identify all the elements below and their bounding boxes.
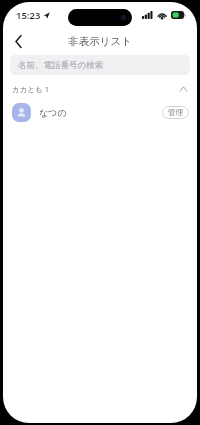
button[interactable]: 名前、電話番号の検索 (10, 55, 190, 75)
staticText: 非表示リスト (68, 35, 132, 48)
staticText: 名前、電話番号の検索 (18, 60, 104, 71)
button[interactable]: カカとも 1 (3, 80, 197, 97)
staticText: カカとも 1 (12, 84, 49, 94)
staticText: 15:23 (16, 9, 41, 22)
staticText: なつの (39, 107, 67, 118)
button[interactable]: なつの (3, 97, 197, 127)
staticText: 管理 (168, 108, 183, 117)
button[interactable]: Back (3, 28, 33, 55)
button[interactable]: 管理 (162, 106, 189, 119)
